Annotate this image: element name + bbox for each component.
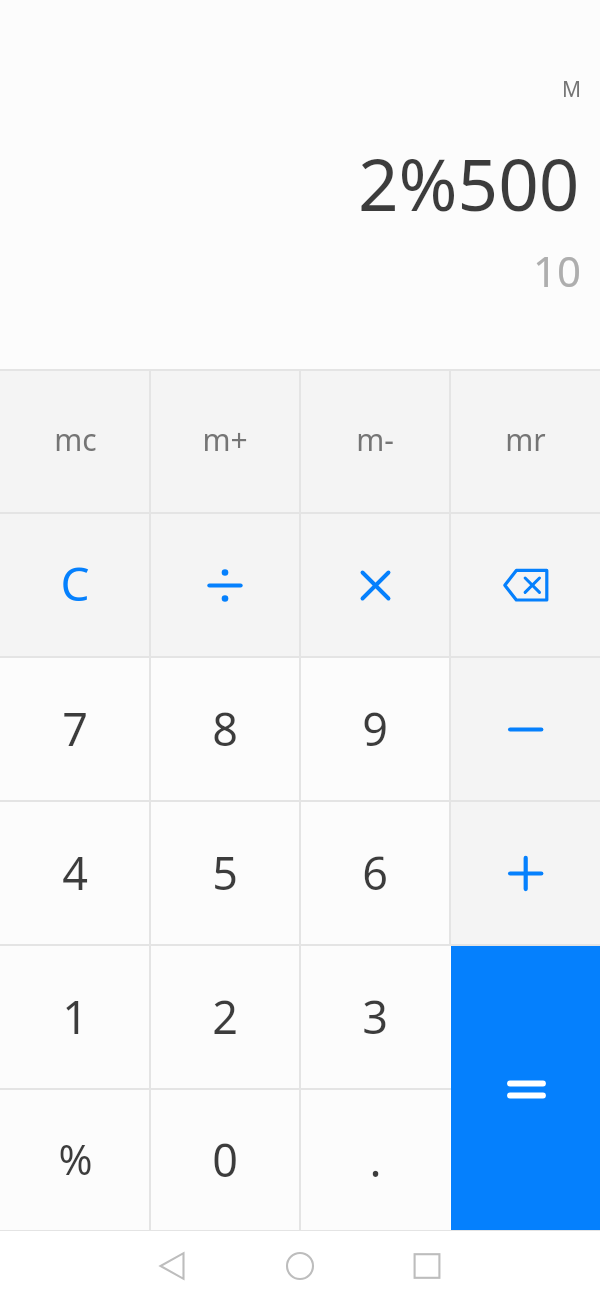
staticText: 5 — [212, 842, 238, 903]
button[interactable]: Backspace — [450, 513, 600, 657]
button[interactable]: C — [0, 513, 150, 657]
button[interactable]: mc — [0, 370, 150, 513]
staticText: m+ — [202, 419, 248, 460]
button[interactable]: Home — [256, 1231, 344, 1300]
button[interactable]: 0 — [150, 1089, 300, 1231]
button[interactable]: 4 — [0, 801, 150, 945]
button[interactable]: 3 — [300, 945, 450, 1089]
staticText: 2 — [212, 986, 238, 1047]
staticText: C — [60, 552, 90, 615]
staticText: 0 — [212, 1129, 238, 1190]
button[interactable]: 1 — [0, 945, 150, 1089]
staticText: % — [58, 1131, 93, 1187]
staticText: 10 — [533, 242, 582, 299]
button[interactable]: m- — [300, 370, 450, 513]
button[interactable]: Equals — [451, 945, 600, 1231]
button[interactable]: 9 — [300, 657, 450, 801]
button[interactable]: 2 — [150, 945, 300, 1089]
staticText: 8 — [212, 698, 238, 759]
staticText: . — [369, 1129, 382, 1190]
button[interactable]: m+ — [150, 370, 300, 513]
staticText: 4 — [62, 842, 88, 903]
button[interactable]: . — [300, 1089, 450, 1231]
button[interactable]: Plus — [450, 801, 600, 945]
button[interactable]: % — [0, 1089, 150, 1231]
staticText: 6 — [362, 842, 388, 903]
staticText: 9 — [362, 698, 388, 759]
button[interactable]: Divide — [150, 513, 300, 657]
staticText: mc — [54, 419, 97, 460]
button[interactable]: Multiply — [300, 513, 450, 657]
button[interactable]: mr — [450, 370, 600, 513]
button[interactable]: 7 — [0, 657, 150, 801]
staticText: 7 — [62, 698, 88, 759]
staticText: M — [562, 75, 582, 104]
button[interactable]: 5 — [150, 801, 300, 945]
button[interactable]: Minus — [450, 657, 600, 801]
button[interactable]: Recents — [383, 1231, 471, 1300]
staticText: m- — [356, 419, 394, 460]
button[interactable]: 8 — [150, 657, 300, 801]
staticText: mr — [505, 419, 546, 460]
staticText: 2%500 — [358, 135, 580, 232]
button[interactable]: 6 — [300, 801, 450, 945]
staticText: 3 — [362, 986, 388, 1047]
staticText: 1 — [62, 986, 88, 1047]
button[interactable]: Back — [128, 1231, 216, 1300]
